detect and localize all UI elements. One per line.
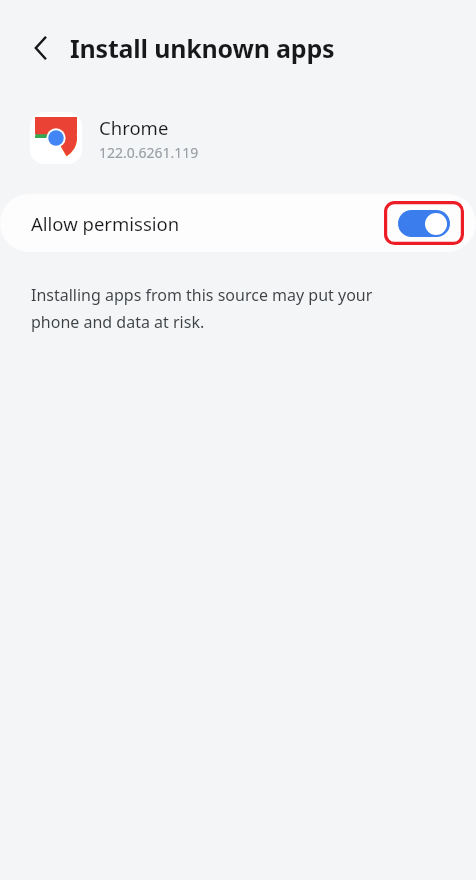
staticText: Allow permission: [31, 211, 180, 236]
button[interactable]: Back: [18, 25, 64, 71]
button[interactable]: Allow permission: [0, 194, 476, 252]
staticText: Chrome: [99, 115, 169, 140]
staticText: Install unknown apps: [70, 31, 335, 65]
button[interactable]: Chrome: [0, 96, 476, 180]
staticText: 122.0.6261.119: [99, 143, 199, 162]
staticText: Installing apps from this source may put…: [31, 284, 421, 333]
button[interactable]: Allow permission toggle: [398, 210, 450, 237]
